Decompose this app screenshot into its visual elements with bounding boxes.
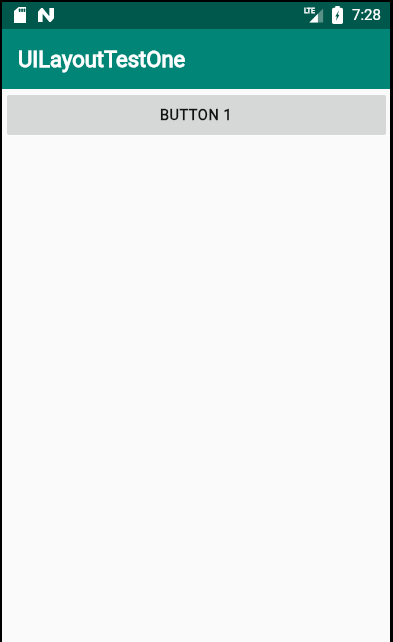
staticText: BUTTON 1: [160, 107, 233, 124]
button[interactable]: BUTTON 1: [7, 95, 386, 135]
staticText: UILayoutTestOne: [18, 47, 186, 73]
staticText: 7:28: [352, 6, 381, 24]
staticText: LTE: [304, 7, 315, 15]
other: SD card: [14, 7, 26, 23]
other: Battery charging: [332, 6, 343, 24]
other: Android N: [38, 8, 54, 22]
other: LTE signal: [304, 7, 324, 23]
